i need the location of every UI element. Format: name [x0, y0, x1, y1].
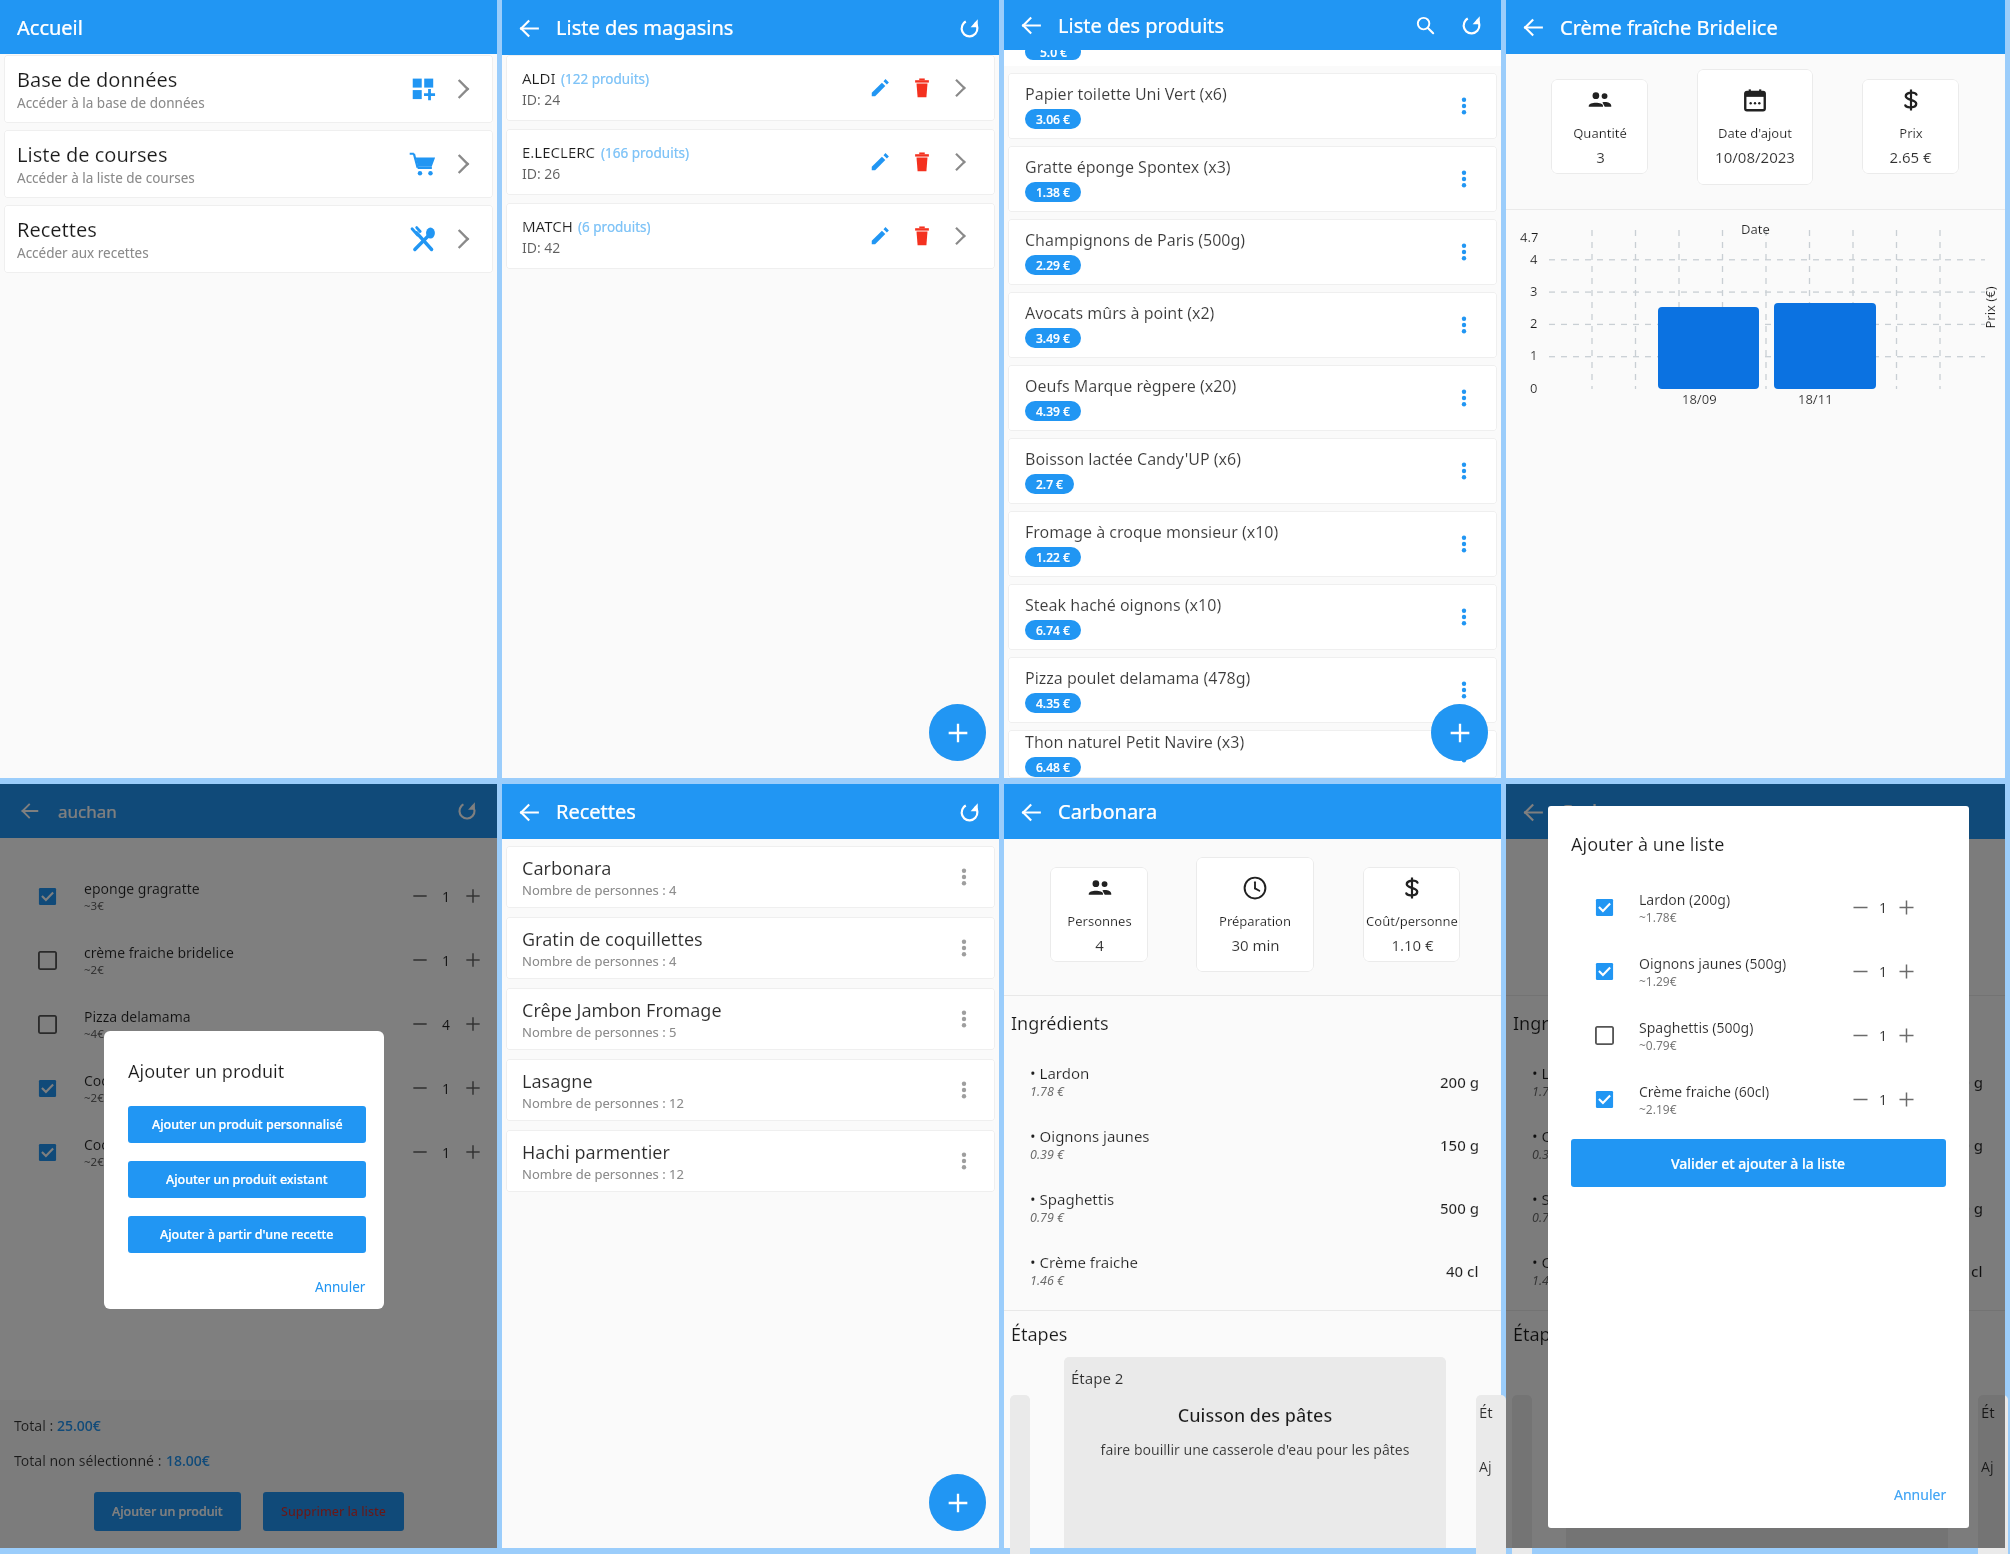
button[interactable]: Back — [1513, 7, 1553, 47]
button[interactable]: Edit — [863, 219, 897, 253]
button[interactable]: Prix — [1862, 79, 1959, 174]
button[interactable]: Thon naturel Petit Navire (x3) — [1008, 730, 1497, 778]
button[interactable]: E.LECLERC — [506, 129, 995, 195]
button[interactable]: • Oignons jaunes — [1506, 1113, 2005, 1176]
button[interactable]: Oeufs Marque règpere (x20) — [1008, 365, 1497, 431]
button[interactable]: More options — [1447, 89, 1481, 123]
button[interactable]: Checkbox — [1548, 1003, 1969, 1067]
staticText: • Lardon — [1532, 1063, 1592, 1083]
button[interactable]: • Crème fraiche — [1506, 1239, 2005, 1302]
button[interactable]: Crêpe Jambon Fromage — [506, 988, 995, 1050]
button[interactable]: • Lardon — [1506, 1050, 2005, 1113]
button[interactable]: Back — [1011, 5, 1051, 45]
button[interactable]: Coût/personne — [1363, 867, 1460, 962]
button[interactable]: Annuler — [1548, 1485, 1969, 1528]
button[interactable]: Checkbox — [0, 1120, 497, 1184]
button[interactable]: Checkbox — [0, 864, 497, 928]
button[interactable]: Valider et ajouter à la liste — [1571, 1139, 1946, 1187]
button[interactable]: Checkbox — [0, 1056, 497, 1120]
button[interactable]: More options — [1447, 527, 1481, 561]
button[interactable]: More options — [947, 1144, 981, 1178]
button[interactable]: More options — [1447, 673, 1481, 707]
button[interactable]: • Crème fraiche — [1004, 1239, 1501, 1302]
button[interactable]: Personnes — [1552, 867, 1650, 962]
button[interactable]: Base de données — [4, 55, 493, 123]
button[interactable]: Ajouter un produit existant — [128, 1161, 366, 1198]
button[interactable]: Delete — [905, 219, 939, 253]
button[interactable]: Champignons de Paris (500g) — [1008, 219, 1497, 285]
staticText: Base de données — [17, 66, 178, 93]
button[interactable]: Personnes — [1050, 867, 1148, 962]
button[interactable]: Back — [1513, 792, 1553, 832]
button[interactable]: Pizza poulet delamama (478g) — [1008, 657, 1497, 723]
button[interactable]: Back — [10, 791, 50, 831]
button[interactable]: Checkbox — [1548, 875, 1969, 939]
staticText: Prix — [1899, 124, 1923, 142]
button[interactable]: Refresh — [949, 8, 989, 48]
button[interactable]: Boisson lactée Candy'UP (x6) — [1008, 438, 1497, 504]
staticText: 1 — [442, 887, 451, 906]
button[interactable]: Coût/personne — [1865, 867, 1962, 962]
button[interactable]: More options — [1447, 454, 1481, 488]
button[interactable]: Back — [509, 792, 549, 832]
button[interactable]: More options — [1447, 162, 1481, 196]
button[interactable]: Carbonara — [506, 846, 995, 908]
button[interactable]: Refresh — [1451, 5, 1491, 45]
button[interactable]: Search — [1405, 5, 1445, 45]
button[interactable]: Add — [929, 704, 986, 761]
button[interactable]: Delete — [905, 71, 939, 105]
button[interactable]: Checkbox — [0, 928, 497, 992]
button[interactable]: MATCH — [506, 203, 995, 269]
button[interactable]: Avocats mûrs à point (x2) — [1008, 292, 1497, 358]
button[interactable]: More options — [1447, 308, 1481, 342]
button[interactable]: More options — [1447, 235, 1481, 269]
button[interactable]: Lasagne — [506, 1059, 995, 1121]
button[interactable]: Edit — [863, 145, 897, 179]
button[interactable]: Checkbox — [1548, 939, 1969, 1003]
button[interactable]: • Spaghettis — [1506, 1176, 2005, 1239]
button[interactable]: ALDI — [506, 55, 995, 121]
button[interactable]: Steak haché oignons (x10) — [1008, 584, 1497, 650]
button[interactable]: Gratte éponge Spontex (x3) — [1008, 146, 1497, 212]
button[interactable]: More options — [1447, 600, 1481, 634]
button[interactable]: More options — [947, 1073, 981, 1107]
button[interactable]: Préparation — [1196, 857, 1314, 972]
button[interactable]: Gratin de coquillettes — [506, 917, 995, 979]
button[interactable]: Liste de courses — [4, 130, 493, 198]
button[interactable]: Fromage à croque monsieur (x10) — [1008, 511, 1497, 577]
button[interactable]: Back — [1011, 792, 1051, 832]
button[interactable]: Refresh — [949, 792, 989, 832]
button[interactable]: • Lardon — [1004, 1050, 1501, 1113]
staticText: 1.22 € — [1036, 549, 1070, 565]
button[interactable]: More options — [947, 931, 981, 965]
button[interactable]: Quantité — [1551, 79, 1648, 174]
button[interactable]: Préparation — [1698, 857, 1816, 972]
button[interactable]: More options — [947, 860, 981, 894]
button[interactable]: Delete — [905, 145, 939, 179]
button[interactable]: Supprimer la liste — [263, 1492, 404, 1531]
button[interactable]: • Spaghettis — [1004, 1176, 1501, 1239]
button[interactable]: Papier toilette Uni Vert (x6) — [1008, 73, 1497, 139]
button[interactable]: Refresh — [447, 791, 487, 831]
button[interactable]: Ajouter un produit — [94, 1492, 241, 1531]
button[interactable]: Ajouter à partir d'une recette — [128, 1216, 366, 1253]
button[interactable]: Ajouter un produit personnalisé — [128, 1106, 366, 1143]
button[interactable]: More options — [1447, 737, 1481, 771]
staticText: ~0.79€ — [1639, 1037, 1677, 1053]
button[interactable]: More options — [1447, 381, 1481, 415]
button[interactable]: Date d'ajout — [1697, 69, 1813, 185]
button[interactable]: Add — [929, 1474, 986, 1531]
button[interactable]: Recettes — [4, 205, 493, 273]
button[interactable]: More options — [947, 1002, 981, 1036]
staticText: 5.0 € — [1040, 50, 1067, 60]
button[interactable]: • Oignons jaunes — [1004, 1113, 1501, 1176]
button[interactable]: Add — [1431, 704, 1488, 761]
button[interactable]: Back — [509, 8, 549, 48]
button[interactable]: Edit — [863, 71, 897, 105]
button[interactable]: Checkbox — [0, 992, 497, 1056]
button[interactable]: Checkbox — [1548, 1067, 1969, 1131]
button[interactable]: Hachi parmentier — [506, 1130, 995, 1192]
staticText: Ét — [1479, 1402, 1493, 1422]
button[interactable]: Annuler — [128, 1278, 366, 1309]
